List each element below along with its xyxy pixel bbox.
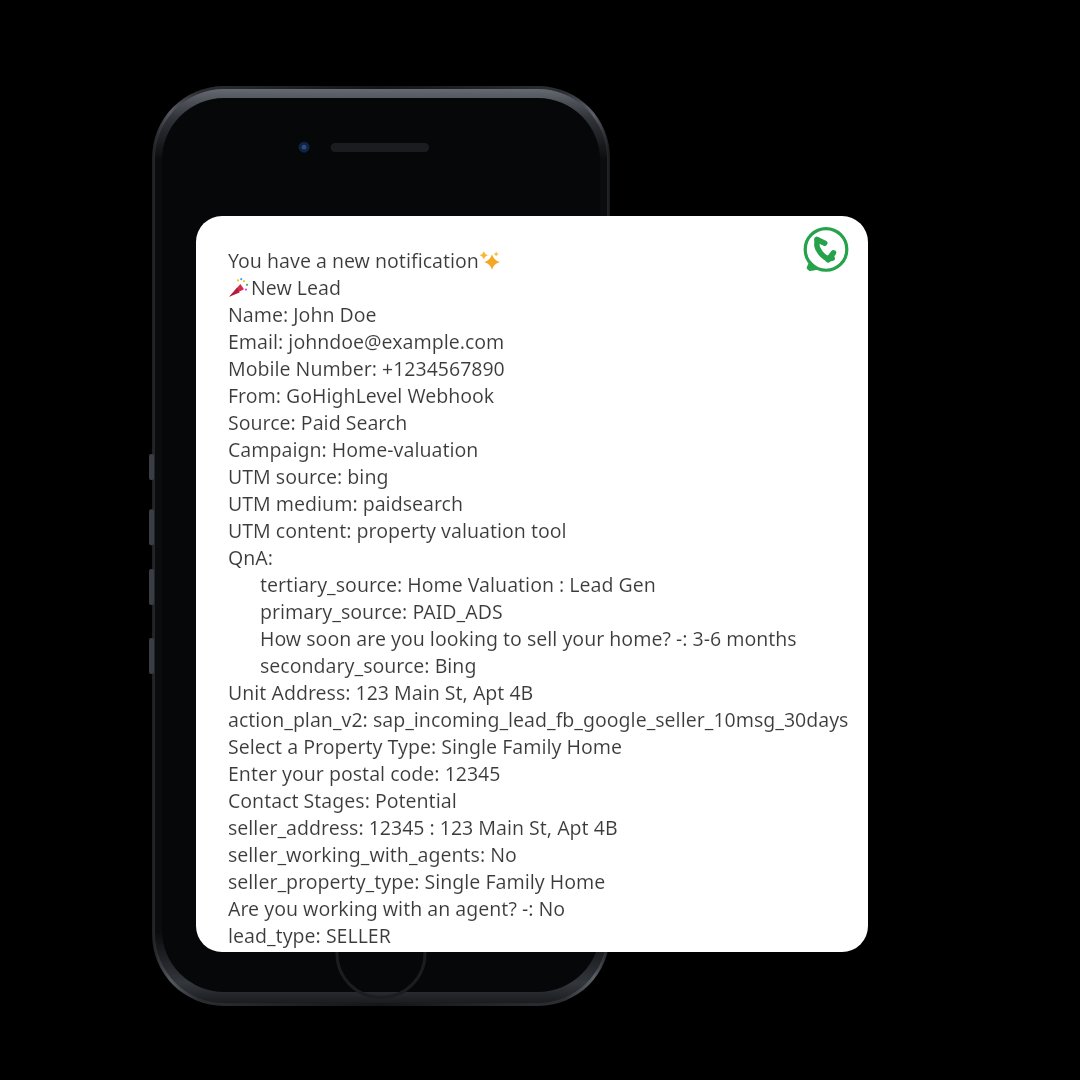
staticText: You have a new notification bbox=[228, 247, 479, 274]
staticText: primary_source: PAID_ADS bbox=[260, 598, 503, 625]
staticText: UTM content: property valuation tool bbox=[228, 517, 567, 544]
staticText: Are you working with an agent? -: No bbox=[228, 895, 566, 922]
staticText: Mobile Number: +1234567890 bbox=[228, 355, 505, 382]
staticText: tertiary_source: Home Valuation : Lead G… bbox=[260, 571, 656, 598]
staticText: seller_working_with_agents: No bbox=[228, 841, 517, 868]
staticText: How soon are you looking to sell your ho… bbox=[260, 625, 797, 652]
staticText: New Lead bbox=[251, 274, 341, 301]
staticText: Email: johndoe@example.com bbox=[228, 328, 505, 355]
staticText: Campaign: Home-valuation bbox=[228, 436, 479, 463]
staticText: Enter your postal code: 12345 bbox=[228, 760, 501, 787]
staticText: UTM medium: paidsearch bbox=[228, 490, 463, 517]
staticText: QnA: bbox=[228, 544, 273, 571]
staticText: seller_property_type: Single Family Home bbox=[228, 868, 606, 895]
staticText: secondary_source: Bing bbox=[260, 652, 477, 679]
staticText: Unit Address: 123 Main St, Apt 4B bbox=[228, 679, 534, 706]
staticText: lead_type: SELLER bbox=[228, 922, 391, 949]
staticText: UTM source: bing bbox=[228, 463, 389, 490]
staticText: seller_address: 12345 : 123 Main St, Apt… bbox=[228, 814, 618, 841]
staticText: Contact Stages: Potential bbox=[228, 787, 457, 814]
staticText: Source: Paid Search bbox=[228, 409, 408, 436]
button[interactable]: Open in WhatsApp bbox=[800, 225, 852, 277]
staticText: Name: John Doe bbox=[228, 301, 377, 328]
staticText: action_plan_v2: sap_incoming_lead_fb_goo… bbox=[228, 706, 849, 733]
staticText: From: GoHighLevel Webhook bbox=[228, 382, 495, 409]
staticText: Select a Property Type: Single Family Ho… bbox=[228, 733, 622, 760]
